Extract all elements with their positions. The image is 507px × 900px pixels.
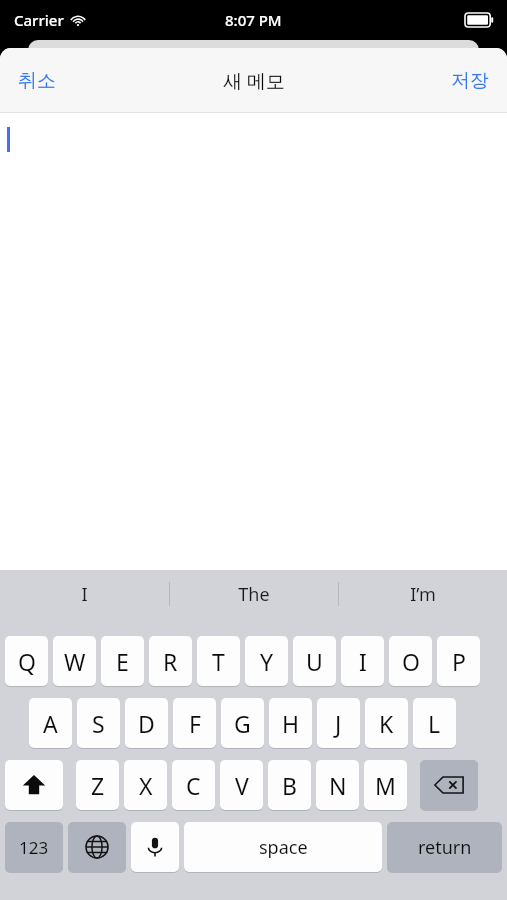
button[interactable]: 취소 [0,59,74,103]
staticText: W [64,646,86,677]
staticText: H [282,708,300,739]
staticText: 저장 [451,69,489,93]
button[interactable]: The [169,570,338,618]
button[interactable]: T [197,636,240,686]
staticText: R [163,646,178,677]
button[interactable]: A [29,698,72,748]
button[interactable]: Backspace [420,760,478,810]
button[interactable]: N [316,760,359,810]
staticText: 123 [19,836,49,859]
button[interactable]: 저장 [433,59,507,103]
staticText: M [375,770,396,801]
button[interactable]: E [101,636,144,686]
staticText: N [329,770,347,801]
button[interactable]: return [387,822,502,872]
button[interactable]: Switch keyboard [68,822,126,872]
button[interactable]: O [389,636,432,686]
staticText: X [139,770,153,801]
button[interactable]: J [317,698,360,748]
staticText: C [186,770,201,801]
button[interactable]: W [53,636,96,686]
staticText: Q [18,646,36,677]
staticText: O [402,646,420,677]
button[interactable]: C [172,760,215,810]
staticText: K [379,708,394,739]
button[interactable]: X [124,760,167,810]
button[interactable]: F [173,698,216,748]
staticText: U [306,646,323,677]
staticText: 새 메모 [223,68,285,94]
button[interactable]: Y [245,636,288,686]
button[interactable]: S [77,698,120,748]
button[interactable]: V [220,760,263,810]
staticText: I [81,582,88,607]
button[interactable]: Q [5,636,48,686]
staticText: The [238,582,270,607]
button[interactable]: Shift [5,760,63,810]
staticText: A [43,708,58,739]
button[interactable]: K [365,698,408,748]
staticText: 취소 [18,69,56,93]
staticText: I [359,646,367,677]
button[interactable]: P [437,636,480,686]
staticText: Carrier [14,10,64,30]
button[interactable]: D [125,698,168,748]
button[interactable]: space [184,822,382,872]
staticText: D [138,708,155,739]
staticText: L [428,708,441,739]
staticText: E [116,646,129,677]
button[interactable]: R [149,636,192,686]
button[interactable]: I [0,570,169,618]
staticText: return [418,835,472,860]
staticText: Y [260,646,274,677]
button[interactable]: Dictate [131,822,179,872]
staticText: J [335,708,342,739]
staticText: V [235,770,249,801]
button[interactable]: 123 [5,822,63,872]
staticText: B [282,770,297,801]
staticText: T [212,646,225,677]
staticText: space [259,835,308,860]
staticText: Z [91,770,105,801]
staticText: 8:07 PM [225,10,282,30]
button[interactable]: H [269,698,312,748]
button[interactable]: I’m [338,570,507,618]
button[interactable]: Z [76,760,119,810]
button[interactable]: B [268,760,311,810]
button[interactable]: M [364,760,407,810]
button[interactable]: I [341,636,384,686]
staticText: P [452,646,466,677]
button[interactable]: L [413,698,456,748]
button[interactable]: U [293,636,336,686]
button[interactable]: G [221,698,264,748]
staticText: F [189,708,201,739]
staticText: I’m [410,582,436,607]
staticText: S [92,708,105,739]
staticText: G [234,708,251,739]
